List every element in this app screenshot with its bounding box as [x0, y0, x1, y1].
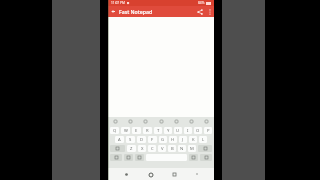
button[interactable]: Keyboard tool 3 — [142, 118, 149, 125]
button[interactable]: Share — [194, 6, 205, 17]
staticText: J — [182, 137, 184, 143]
button[interactable]: T — [154, 127, 162, 134]
button[interactable]: Home — [146, 170, 155, 179]
button[interactable]: B — [168, 145, 176, 152]
button[interactable]: Keyboard tool 6 — [188, 118, 195, 125]
button[interactable]: S — [126, 136, 135, 143]
staticText: F — [151, 137, 154, 143]
button[interactable]: K — [189, 136, 197, 143]
button[interactable]: Z — [127, 145, 136, 152]
staticText: Q — [113, 128, 117, 134]
button[interactable]: O — [194, 127, 202, 134]
button[interactable]: Back — [108, 6, 119, 17]
staticText: M — [190, 146, 194, 152]
button[interactable]: A — [115, 136, 124, 143]
staticText: N — [180, 146, 184, 152]
staticText: T — [157, 128, 160, 134]
staticText: R — [146, 128, 149, 134]
staticText: A — [118, 137, 121, 143]
staticText: L — [202, 137, 205, 143]
button[interactable]: Keyboard tool 2 — [127, 118, 134, 125]
button[interactable]: Keyboard tool 4 — [158, 118, 165, 125]
staticText: W — [124, 128, 128, 134]
button[interactable]: N — [178, 145, 186, 152]
staticText: Fast Notepad — [119, 8, 153, 15]
staticText: U — [176, 128, 180, 134]
button[interactable]: H — [169, 136, 177, 143]
staticText: D — [140, 137, 144, 143]
button[interactable]: Keyboard tool 5 — [173, 118, 180, 125]
staticText: S — [129, 137, 132, 143]
button[interactable]: P — [204, 127, 212, 134]
staticText: C — [151, 146, 154, 152]
button[interactable]: X — [138, 145, 146, 152]
staticText: X — [141, 146, 144, 152]
button[interactable]: M — [188, 145, 196, 152]
button[interactable]: Back — [122, 170, 131, 179]
button[interactable]: V — [158, 145, 166, 152]
button[interactable]: F — [148, 136, 157, 143]
button[interactable]: I — [184, 127, 192, 134]
staticText: O — [196, 128, 200, 134]
staticText: E — [135, 128, 138, 134]
button[interactable]: Hide keyboard — [194, 171, 200, 177]
button[interactable]: E — [132, 127, 141, 134]
button[interactable]: G — [159, 136, 167, 143]
staticText: P — [207, 128, 210, 134]
button[interactable]: D — [137, 136, 146, 143]
staticText: K — [192, 137, 195, 143]
staticText: Z — [130, 146, 133, 152]
staticText: H — [171, 137, 175, 143]
button[interactable]: Q — [110, 127, 119, 134]
staticText: G — [161, 137, 165, 143]
button[interactable]: C — [148, 145, 156, 152]
staticText: V — [161, 146, 164, 152]
button[interactable]: Numbers — [110, 154, 122, 161]
button[interactable]: J — [179, 136, 187, 143]
staticText: B — [171, 146, 174, 152]
button[interactable]: U — [174, 127, 182, 134]
staticText: 11:07 PM — [111, 1, 125, 5]
staticText: I — [187, 128, 189, 134]
button[interactable]: R — [143, 127, 152, 134]
button[interactable]: W — [121, 127, 130, 134]
button[interactable] — [108, 17, 214, 117]
button[interactable]: L — [199, 136, 207, 143]
button[interactable]: Keyboard tool 7 — [203, 118, 210, 125]
staticText: 84% — [198, 1, 205, 5]
button[interactable]: Emoji — [135, 154, 144, 161]
button[interactable]: Recents — [170, 170, 179, 179]
button[interactable]: Keyboard tool 1 — [112, 118, 119, 125]
button[interactable]: Period — [189, 154, 198, 161]
button[interactable]: Shift — [110, 145, 125, 152]
button[interactable]: Comma — [124, 154, 133, 161]
staticText: Y — [167, 128, 170, 134]
button[interactable]: Enter — [200, 154, 212, 161]
button[interactable]: Y — [164, 127, 172, 134]
button[interactable]: Backspace — [198, 145, 212, 152]
button[interactable]: More options — [205, 7, 214, 16]
